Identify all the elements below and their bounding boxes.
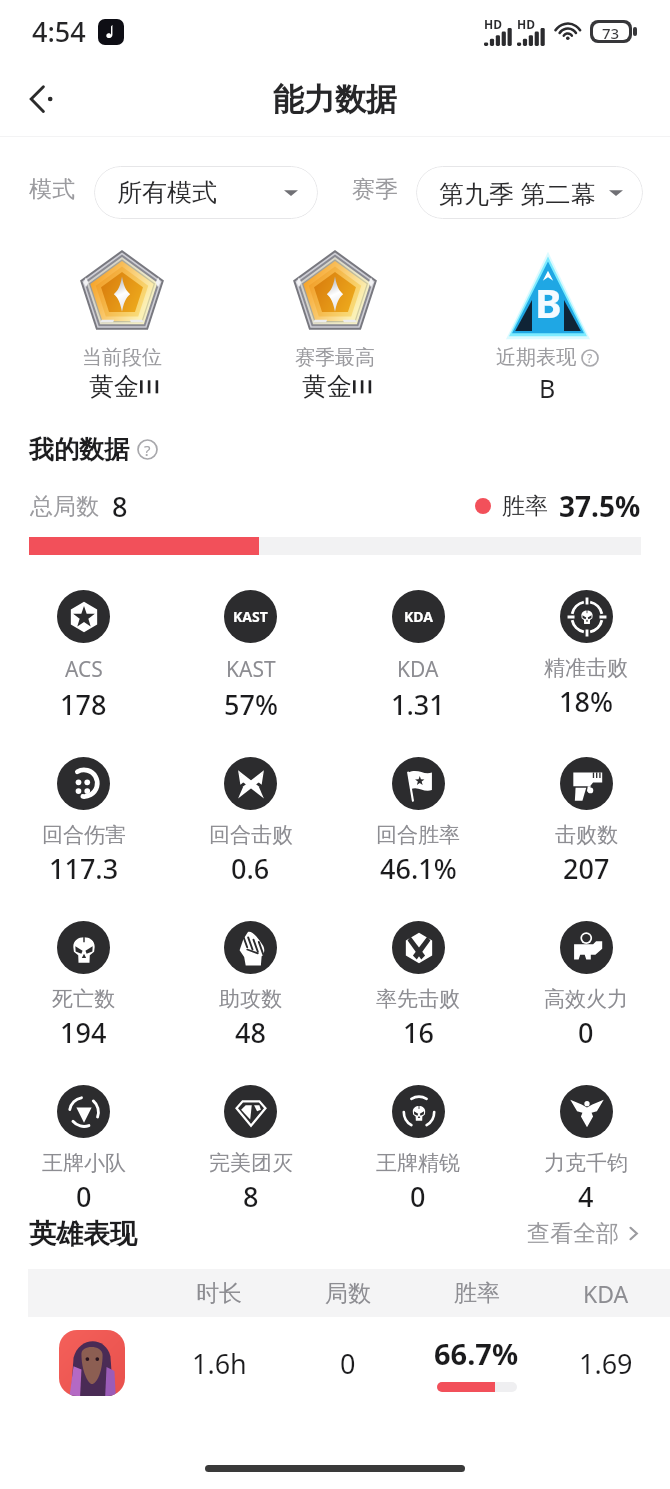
- button[interactable]: 精准击败: [502, 590, 670, 720]
- staticText: 完美团灭: [209, 1150, 293, 1176]
- staticText: KDA: [397, 655, 439, 684]
- button[interactable]: 王牌精锐: [334, 1085, 502, 1215]
- button[interactable]: 回合胜率: [334, 757, 502, 887]
- staticText: 0: [76, 1178, 92, 1215]
- staticText: KAST: [233, 607, 268, 626]
- button[interactable]: 第九季 第二幕: [416, 166, 643, 219]
- staticText: 王牌小队: [42, 1150, 126, 1176]
- staticText: 4: [578, 1178, 594, 1215]
- button[interactable]: 1.6h: [28, 1317, 670, 1409]
- staticText: 194: [60, 1014, 107, 1051]
- staticText: 高效火力: [544, 986, 628, 1012]
- staticText: 所有模式: [117, 177, 217, 208]
- button[interactable]: 完美团灭: [167, 1085, 334, 1215]
- staticText: 局数: [325, 1279, 371, 1308]
- staticText: 当前段位: [82, 345, 162, 370]
- button[interactable]: ACS: [0, 590, 167, 723]
- button[interactable]: 死亡数: [0, 921, 167, 1051]
- staticText: 48: [235, 1014, 266, 1051]
- button[interactable]: 助攻数: [167, 921, 334, 1051]
- staticText: 我的数据: [29, 434, 129, 465]
- button[interactable]: 查看全部: [523, 1215, 645, 1252]
- staticText: ?: [587, 350, 593, 366]
- staticText: 46.1%: [380, 850, 457, 887]
- button[interactable]: 力克千钧: [502, 1085, 670, 1215]
- staticText: 73: [602, 23, 620, 40]
- staticText: 1.6h: [192, 1345, 247, 1382]
- button[interactable]: 高效火力: [502, 921, 670, 1051]
- staticText: 英雄表现: [29, 1217, 137, 1251]
- staticText: 查看全部: [527, 1219, 619, 1248]
- staticText: 总局数: [30, 492, 99, 521]
- staticText: 37.5%: [559, 487, 641, 525]
- staticText: 117.3: [49, 850, 119, 887]
- staticText: 率先击败: [376, 986, 460, 1012]
- staticText: 时长: [196, 1279, 242, 1308]
- staticText: 4:54: [32, 13, 86, 50]
- staticText: 回合伤害: [42, 822, 126, 848]
- staticText: KAST: [226, 655, 276, 684]
- button[interactable]: 王牌小队: [0, 1085, 167, 1215]
- staticText: 8: [243, 1178, 259, 1215]
- staticText: KDA: [404, 607, 433, 626]
- staticText: 1.69: [579, 1345, 633, 1382]
- staticText: 胜率: [454, 1279, 500, 1308]
- staticText: ACS: [65, 655, 103, 684]
- staticText: 178: [60, 686, 107, 723]
- staticText: HD: [517, 16, 535, 32]
- staticText: 16: [403, 1014, 434, 1051]
- staticText: ?: [144, 440, 151, 460]
- staticText: 王牌精锐: [376, 1150, 460, 1176]
- staticText: 赛季: [352, 175, 398, 204]
- staticText: 0.6: [231, 850, 270, 887]
- staticText: 近期表现: [496, 345, 576, 370]
- staticText: 0: [578, 1014, 594, 1051]
- staticText: HD: [484, 16, 502, 32]
- button[interactable]: 回合伤害: [0, 757, 167, 887]
- staticText: 黄金: [302, 371, 352, 402]
- staticText: 能力数据: [273, 80, 397, 119]
- staticText: B: [535, 275, 562, 329]
- staticText: 赛季最高: [295, 345, 375, 370]
- button[interactable]: 回合击败: [167, 757, 334, 887]
- staticText: B: [539, 371, 556, 405]
- staticText: 8: [112, 488, 128, 525]
- staticText: 1.31: [391, 686, 445, 723]
- staticText: 18%: [559, 683, 613, 720]
- staticText: 66.7%: [434, 1334, 519, 1373]
- staticText: 第九季 第二幕: [439, 176, 596, 210]
- staticText: 击败数: [555, 822, 618, 848]
- button[interactable]: 击败数: [502, 757, 670, 887]
- staticText: 精准击败: [544, 655, 628, 681]
- staticText: 0: [340, 1345, 356, 1382]
- button[interactable]: KAST: [167, 590, 334, 723]
- button[interactable]: 率先击败: [334, 921, 502, 1051]
- staticText: 回合胜率: [376, 822, 460, 848]
- staticText: 力克千钧: [544, 1150, 628, 1176]
- staticText: 57%: [224, 686, 278, 723]
- staticText: 207: [563, 850, 610, 887]
- button[interactable]: 所有模式: [94, 166, 318, 219]
- staticText: 死亡数: [52, 986, 115, 1012]
- staticText: 模式: [29, 175, 75, 204]
- button[interactable]: KDA: [334, 590, 502, 723]
- staticText: 助攻数: [219, 986, 282, 1012]
- button[interactable]: Back: [12, 71, 68, 127]
- staticText: 胜率: [502, 492, 548, 521]
- staticText: KDA: [583, 1278, 629, 1309]
- staticText: 黄金: [89, 371, 139, 402]
- staticText: 回合击败: [209, 822, 293, 848]
- staticText: 0: [410, 1178, 426, 1215]
